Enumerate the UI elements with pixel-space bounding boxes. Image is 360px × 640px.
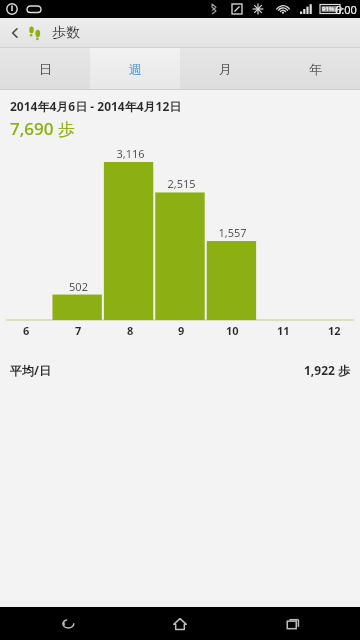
- button[interactable]: Back: [23, 607, 113, 640]
- staticText: 7: [75, 323, 82, 338]
- staticText: 3,116: [116, 146, 145, 161]
- staticText: 502: [69, 279, 88, 294]
- button[interactable]: 日: [0, 48, 90, 90]
- staticText: 6: [23, 323, 30, 338]
- staticText: 9: [178, 323, 185, 338]
- staticText: 8: [127, 323, 134, 338]
- staticText: 7,690 歩: [10, 117, 75, 140]
- staticText: 10: [226, 323, 239, 338]
- staticText: 1,557: [218, 225, 247, 240]
- button[interactable]: 月: [180, 48, 270, 90]
- staticText: 2014年4月6日 - 2014年4月12日: [10, 98, 182, 114]
- staticText: 11: [277, 323, 290, 338]
- button[interactable]: 週: [90, 48, 180, 90]
- button[interactable]: Recent apps: [248, 607, 338, 640]
- staticText: 年: [309, 61, 322, 77]
- staticText: 月: [219, 61, 232, 77]
- staticText: 91%: [322, 5, 335, 13]
- staticText: 日: [39, 61, 52, 77]
- staticText: 6:00: [335, 2, 357, 17]
- staticText: 週: [129, 61, 142, 77]
- staticText: 2,515: [167, 176, 196, 191]
- button[interactable]: Back: [4, 22, 26, 44]
- button[interactable]: Home: [135, 607, 225, 640]
- staticText: 1,922 歩: [304, 362, 350, 378]
- staticText: 12: [328, 323, 341, 338]
- staticText: 平均/日: [10, 362, 51, 378]
- button[interactable]: 年: [270, 48, 360, 90]
- staticText: 歩数: [52, 24, 80, 42]
